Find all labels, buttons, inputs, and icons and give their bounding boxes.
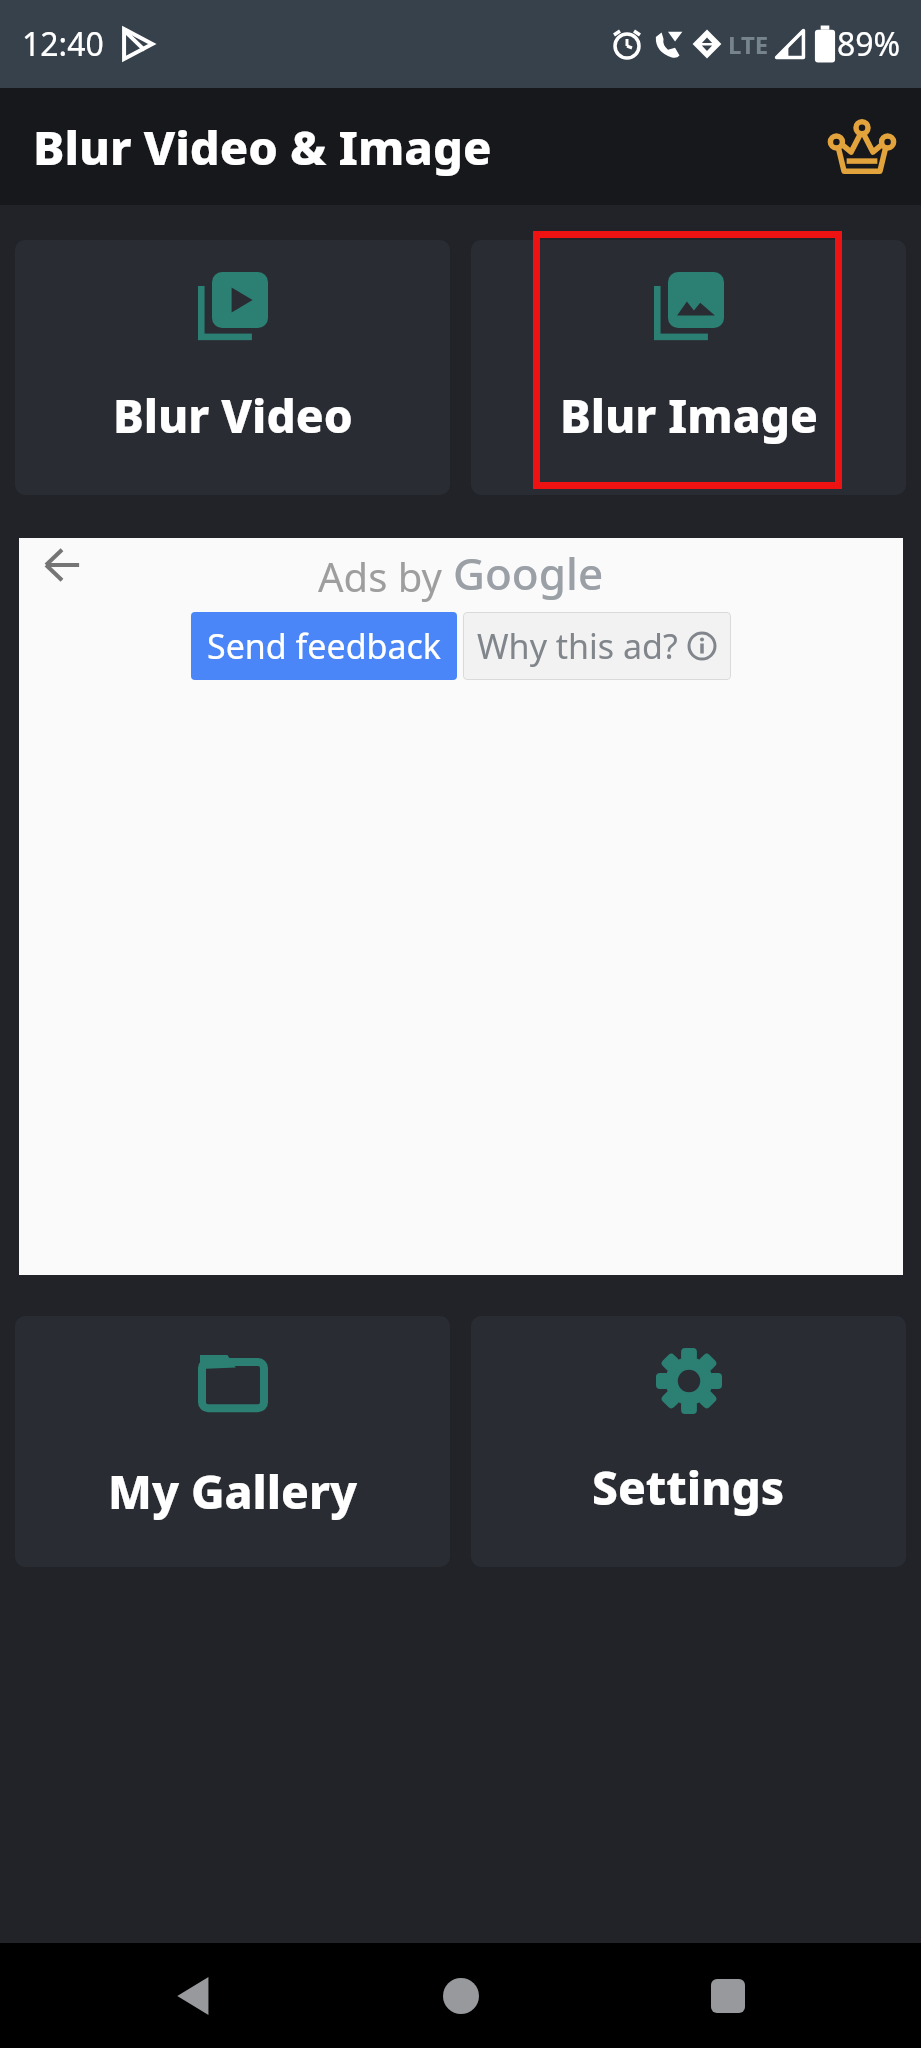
- button[interactable]: [408, 1943, 513, 2048]
- staticText: Google: [453, 543, 604, 603]
- staticText: Blur Video: [113, 384, 353, 447]
- button[interactable]: [827, 112, 897, 182]
- button[interactable]: My Gallery: [15, 1316, 450, 1567]
- staticText: Blur Image: [560, 384, 818, 447]
- staticText: Blur Video & Image: [33, 115, 492, 179]
- staticText: Send feedback: [207, 623, 442, 669]
- button[interactable]: Settings: [471, 1316, 906, 1567]
- staticText: Why this ad?: [477, 623, 687, 669]
- staticText: 12:40: [22, 22, 104, 66]
- staticText: Settings: [592, 1456, 785, 1519]
- button[interactable]: Blur Image: [471, 240, 906, 495]
- staticText: LTE: [728, 28, 769, 61]
- button[interactable]: Send feedback: [191, 612, 457, 680]
- button[interactable]: [675, 1943, 780, 2048]
- staticText: 89%: [837, 22, 901, 66]
- staticText: Ads by: [318, 549, 453, 603]
- button[interactable]: Why this ad?: [463, 612, 731, 680]
- button[interactable]: [141, 1943, 246, 2048]
- staticText: My Gallery: [108, 1460, 358, 1523]
- button[interactable]: Blur Video: [15, 240, 450, 495]
